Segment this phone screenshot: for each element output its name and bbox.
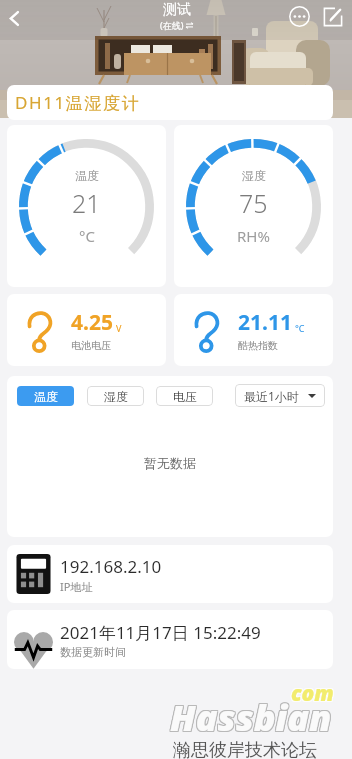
staticText: com (292, 678, 335, 707)
button[interactable]: 温度 (7, 125, 166, 287)
staticText: Hassbian (170, 693, 332, 742)
staticText: 21.11 (238, 308, 292, 337)
staticText: com (291, 680, 334, 709)
staticText: °C (79, 226, 95, 246)
button[interactable]: 湿度 (174, 125, 333, 287)
button[interactable]: Back (0, 4, 28, 32)
button[interactable]: 21.11 (174, 294, 333, 366)
staticText: Hassbian (170, 694, 332, 743)
staticText: DH11温湿度计 (15, 91, 141, 114)
staticText: °C (295, 322, 305, 334)
staticText: 192.168.2.10 (60, 555, 162, 578)
staticText: 湿度 (104, 389, 128, 404)
button[interactable]: DH11温湿度计 (7, 85, 333, 120)
staticText: com (291, 679, 334, 708)
staticText: 电池电压 (71, 339, 111, 352)
staticText: 测试 (163, 1, 191, 19)
staticText: Hassbian (171, 693, 333, 742)
staticText: 暂无数据 (144, 455, 196, 471)
staticText: 瀚思彼岸技术论坛 (173, 739, 317, 759)
staticText: com (292, 679, 335, 708)
staticText: 温度 (34, 389, 58, 404)
staticText: Hassbian (169, 693, 331, 742)
staticText: com (290, 680, 333, 709)
staticText: IP地址 (60, 579, 93, 594)
staticText: 4.25 (71, 308, 113, 337)
staticText: com (290, 678, 333, 707)
staticText: Hassbian (171, 694, 333, 743)
staticText: 湿度 (242, 168, 266, 183)
staticText: 数据更新时间 (60, 645, 126, 659)
staticText: 最近1小时 (244, 388, 299, 404)
staticText: V (116, 322, 122, 334)
staticText: 75 (239, 186, 268, 220)
staticText: Hassbian (171, 692, 333, 741)
button[interactable]: Edit (319, 3, 346, 30)
staticText: (在线) (160, 19, 184, 31)
staticText: 酷热指数 (238, 339, 278, 352)
button[interactable]: 温度 (17, 386, 74, 406)
staticText: Hassbian (169, 694, 331, 743)
staticText: com (292, 680, 335, 709)
staticText: com (291, 678, 334, 707)
button[interactable]: 192.168.2.10 (7, 545, 333, 603)
button[interactable]: 电压 (156, 386, 213, 406)
staticText: 电压 (173, 389, 197, 404)
staticText: RH% (237, 226, 270, 246)
staticText: Hassbian (169, 692, 331, 741)
staticText: 2021年11月17日 15:22:49 (60, 621, 261, 644)
button[interactable]: 4.25 (7, 294, 166, 366)
button[interactable]: 湿度 (87, 386, 144, 406)
button[interactable]: 2021年11月17日 15:22:49 (7, 610, 333, 669)
staticText: 温度 (75, 168, 99, 183)
staticText: Hassbian (170, 692, 332, 741)
button[interactable]: More options (286, 3, 313, 30)
staticText: 21 (72, 186, 101, 220)
staticText: com (290, 679, 333, 708)
button[interactable]: 最近1小时 (235, 384, 325, 407)
